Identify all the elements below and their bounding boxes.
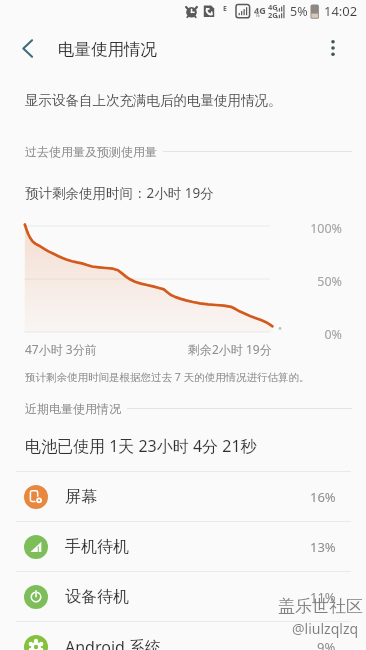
staticText: 剩余2小时 19分 (188, 341, 272, 357)
staticText: 设备待机 (65, 587, 129, 607)
staticText: 14:02 (324, 2, 358, 20)
staticText: 预计剩余使用时间：2小时 19分 (25, 184, 214, 202)
staticText: 50% (0, 273, 342, 290)
staticText: 0% (0, 326, 342, 343)
staticText: 手机待机 (65, 537, 129, 557)
staticText: @liulzqlzq (292, 619, 359, 638)
staticText: Android 系统 (65, 636, 162, 650)
staticText: 13% (310, 538, 336, 556)
staticText: 16% (310, 488, 336, 506)
staticText: 47小时 3分前 (25, 341, 97, 357)
staticText: 电池已使用 1天 23小时 4分 21秒 (25, 435, 257, 457)
staticText: 显示设备自上次充满电后的电量使用情况。 (25, 92, 282, 109)
button[interactable]: 设备待机 (0, 572, 366, 621)
staticText: 100% (0, 220, 342, 237)
staticText: E (223, 4, 227, 14)
staticText: 4G (254, 4, 266, 16)
staticText: 11% (310, 588, 336, 606)
staticText: 电量使用情况 (58, 39, 157, 60)
button[interactable]: 手机待机 (0, 522, 366, 571)
staticText: ⇅ (255, 11, 261, 19)
staticText: 预计剩余使用时间是根据您过去 7 天的使用情况进行估算的。 (25, 370, 310, 384)
button[interactable]: 屏幕 (0, 472, 366, 521)
staticText: 4G (268, 2, 278, 12)
staticText: 5% (290, 3, 308, 20)
button[interactable]: Back (4, 25, 50, 71)
button[interactable]: Android 系统 (0, 622, 366, 650)
button[interactable]: More options (310, 25, 356, 71)
staticText: 2G (268, 10, 278, 20)
staticText: 盖乐世社区 (278, 596, 363, 617)
staticText: 过去使用量及预测使用量 (25, 144, 157, 159)
staticText: 屏幕 (65, 487, 97, 507)
staticText: 9% (317, 638, 336, 650)
staticText: 近期电量使用情况 (25, 401, 121, 416)
